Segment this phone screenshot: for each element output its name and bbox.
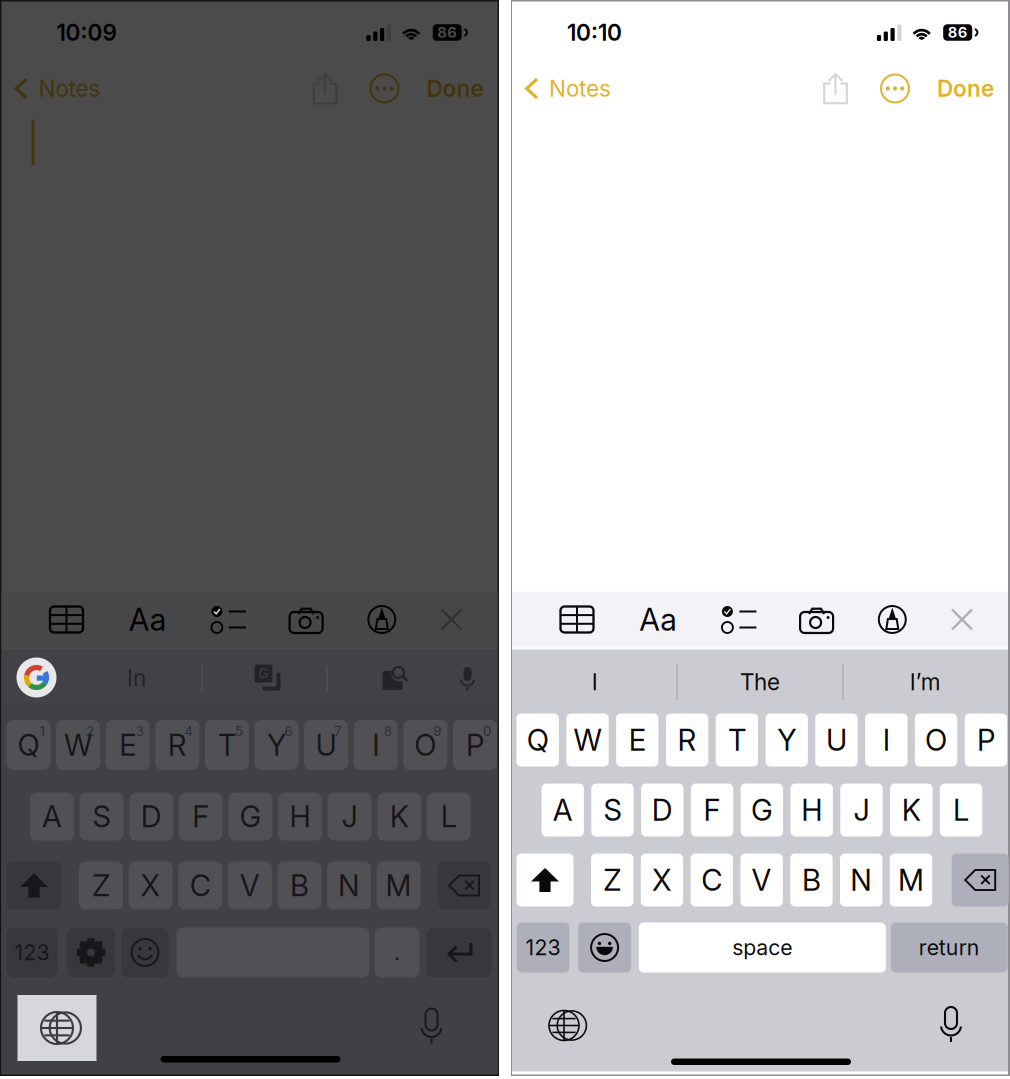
button[interactable]: T — [205, 720, 249, 770]
button[interactable]: K — [890, 783, 932, 836]
button[interactable]: E — [106, 720, 150, 770]
button[interactable]: In — [101, 649, 171, 706]
button[interactable]: Return — [426, 927, 491, 977]
button[interactable]: I — [865, 713, 907, 766]
button[interactable]: return — [891, 922, 1008, 972]
button[interactable]: Dictation — [939, 1004, 963, 1042]
button[interactable]: The — [677, 649, 843, 714]
button[interactable]: Share — [312, 72, 337, 104]
button[interactable]: F — [179, 792, 223, 840]
button[interactable]: Table — [559, 604, 595, 634]
button[interactable]: Shift — [516, 853, 573, 906]
button[interactable]: U — [304, 720, 348, 770]
button[interactable]: Close — [440, 608, 462, 630]
button[interactable]: J — [328, 792, 372, 840]
button[interactable]: I — [512, 649, 677, 714]
button[interactable]: Delete — [438, 861, 490, 909]
button[interactable]: space — [639, 922, 886, 972]
button[interactable]: B — [277, 861, 321, 909]
button[interactable]: M — [890, 853, 932, 906]
button[interactable]: . — [374, 927, 419, 977]
button[interactable]: A — [30, 792, 74, 840]
button[interactable]: X — [641, 853, 683, 906]
button[interactable]: P — [453, 720, 497, 770]
button[interactable]: Z — [591, 853, 633, 906]
button[interactable]: Q — [6, 720, 50, 770]
button[interactable]: U — [815, 713, 858, 766]
button[interactable]: Translate — [252, 662, 282, 692]
button[interactable]: M — [377, 861, 421, 909]
button[interactable]: Emoji — [578, 922, 631, 972]
button[interactable]: W — [566, 713, 609, 766]
button[interactable]: Checklist — [721, 604, 755, 634]
button[interactable]: A — [541, 783, 584, 836]
button[interactable]: R — [666, 713, 708, 766]
button[interactable]: Switch keyboard — [17, 995, 96, 1061]
button[interactable]: Y — [765, 713, 808, 766]
button[interactable]: Emoji — [121, 927, 168, 977]
button[interactable]: Notes — [525, 67, 611, 110]
button[interactable]: Voice input — [458, 664, 476, 692]
button[interactable]: B — [790, 853, 833, 906]
button[interactable]: V — [228, 861, 272, 909]
button[interactable]: L — [427, 792, 471, 840]
button[interactable]: F — [691, 783, 733, 836]
button[interactable]: Notes — [14, 67, 100, 110]
button[interactable]: E — [616, 713, 658, 766]
button[interactable]: Markup — [878, 605, 907, 634]
button[interactable]: N — [840, 853, 882, 906]
button[interactable]: Format — [129, 601, 167, 638]
staticText: 4 — [184, 723, 193, 739]
button[interactable]: Y — [254, 720, 298, 770]
button[interactable]: O — [915, 713, 957, 766]
button[interactable]: D — [129, 792, 173, 840]
button[interactable]: I — [354, 720, 398, 770]
button[interactable]: Google Search — [16, 657, 56, 697]
button[interactable]: Camera — [800, 604, 834, 634]
button[interactable]: Delete — [952, 853, 1009, 906]
button[interactable]: Table — [48, 604, 84, 634]
button[interactable]: R — [155, 720, 199, 770]
button[interactable]: T — [716, 713, 758, 766]
button[interactable]: Q — [516, 713, 559, 766]
button[interactable]: G — [741, 783, 783, 836]
button[interactable]: C — [178, 861, 222, 909]
button[interactable]: Switch keyboard — [549, 1010, 579, 1040]
staticText: U — [316, 727, 337, 763]
button[interactable]: O — [403, 720, 447, 770]
button[interactable]: Stickers — [379, 662, 409, 692]
button[interactable]: Format — [639, 601, 677, 638]
button[interactable]: G — [228, 792, 272, 840]
button[interactable]: Dictation — [419, 1006, 443, 1044]
button[interactable]: P — [965, 713, 1007, 766]
button[interactable]: H — [278, 792, 322, 840]
button[interactable]: Markup — [367, 605, 396, 634]
button[interactable]: 123 — [516, 922, 569, 972]
button[interactable]: Camera — [289, 604, 323, 634]
button[interactable]: Done — [426, 75, 483, 102]
button[interactable]: N — [327, 861, 371, 909]
button[interactable]: Shift — [6, 861, 61, 909]
button[interactable]: Share — [823, 72, 848, 104]
button[interactable]: C — [691, 853, 733, 906]
button[interactable]: K — [377, 792, 421, 840]
button[interactable]: D — [641, 783, 683, 836]
button[interactable]: More — [370, 74, 398, 102]
button[interactable]: L — [940, 783, 982, 836]
button[interactable]: 123 — [6, 927, 57, 977]
button[interactable]: J — [840, 783, 883, 836]
button[interactable]: S — [591, 783, 634, 836]
button[interactable]: X — [129, 861, 173, 909]
button[interactable]: Checklist — [211, 604, 245, 634]
button[interactable]: V — [740, 853, 783, 906]
button[interactable]: Close — [951, 608, 973, 630]
button[interactable]: Z — [79, 861, 123, 909]
button[interactable]: Settings — [67, 927, 114, 977]
button[interactable]: W — [56, 720, 100, 770]
button[interactable]: H — [790, 783, 833, 836]
button[interactable]: S — [80, 792, 124, 840]
button[interactable]: More — [881, 74, 909, 102]
button[interactable]: Done — [937, 75, 994, 102]
button[interactable]: I’m — [843, 649, 1008, 714]
